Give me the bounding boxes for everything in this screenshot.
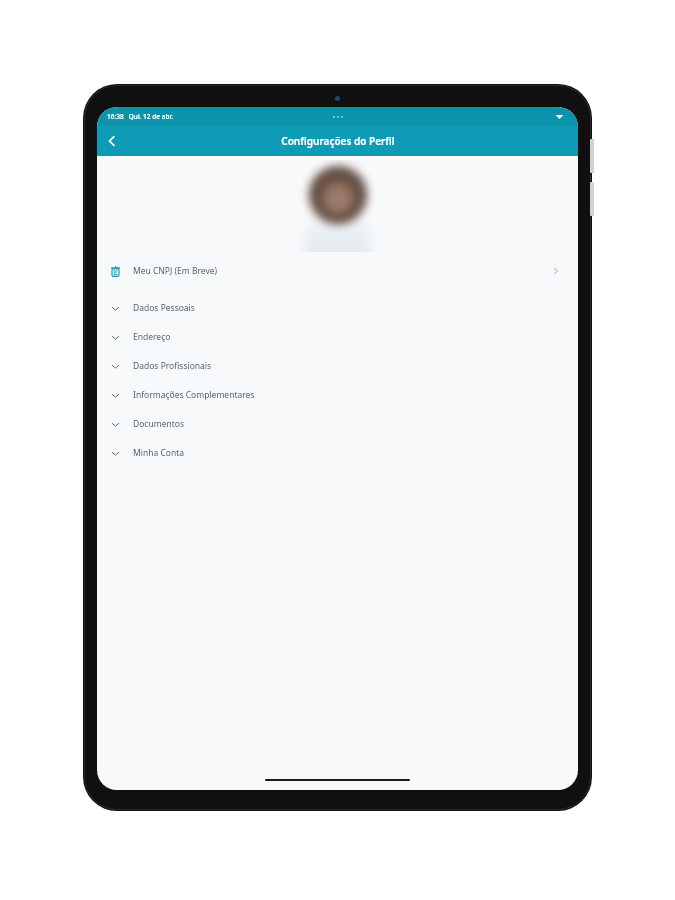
button[interactable]: Endereço (97, 326, 578, 348)
button[interactable]: Dados Profissionais (97, 355, 578, 377)
staticText: 16:38 Qui. 12 de abr. (107, 112, 173, 121)
button[interactable]: Minha Conta (97, 442, 578, 464)
button[interactable]: Meu CNPJ (Em Breve) (97, 260, 578, 282)
staticText: Meu CNPJ (Em Breve) (133, 265, 218, 277)
staticText: Documentos (133, 418, 184, 430)
staticText: Dados Pessoais (133, 302, 195, 314)
staticText: Endereço (133, 331, 171, 343)
staticText: Configurações do Perfil (281, 134, 395, 148)
button[interactable]: Documentos (97, 413, 578, 435)
button[interactable]: Voltar (97, 126, 127, 156)
button[interactable]: Informações Complementares (97, 384, 578, 406)
staticText: Informações Complementares (133, 389, 255, 401)
staticText: Minha Conta (133, 447, 184, 459)
button[interactable]: Dados Pessoais (97, 297, 578, 319)
staticText: Dados Profissionais (133, 360, 212, 372)
